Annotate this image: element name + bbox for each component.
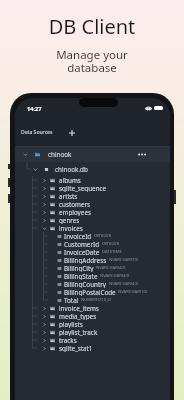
button[interactable]: artists	[15, 192, 170, 200]
button[interactable]: More options	[136, 150, 147, 159]
staticText: BillingPostalCode	[64, 288, 116, 296]
button[interactable]: BillingState	[15, 272, 170, 280]
staticText: BillingCity	[64, 264, 94, 272]
staticText: sqlite_stat1	[59, 344, 93, 352]
staticText: playlist_track	[59, 328, 98, 336]
staticText: chinook	[48, 150, 72, 159]
staticText: NVARCHAR(70)	[109, 257, 139, 263]
staticText: InvoiceId	[64, 232, 92, 240]
staticText: media_types	[59, 312, 97, 320]
staticText: CustomerId	[64, 240, 100, 248]
button[interactable]: Total	[15, 296, 170, 304]
button[interactable]: playlists	[15, 320, 170, 328]
button[interactable]: media_types	[15, 312, 170, 320]
staticText: NVARCHAR(40)	[96, 265, 126, 271]
button[interactable]: genres	[15, 216, 170, 224]
staticText: NVARCHAR(40)	[109, 281, 139, 287]
button[interactable]: invoices	[15, 224, 170, 232]
staticText: genres	[59, 216, 80, 224]
staticText: INTEGER	[102, 241, 120, 247]
button[interactable]: invoice_items	[15, 304, 170, 312]
button[interactable]: playlist_track	[15, 328, 170, 336]
staticText: NVARCHAR(10)	[118, 289, 148, 295]
staticText: Total	[64, 296, 79, 304]
staticText: 14:27	[27, 105, 42, 113]
staticText: albums	[59, 176, 81, 184]
staticText: artists	[59, 192, 78, 200]
button[interactable]: tracks	[15, 336, 170, 344]
staticText: tracks	[59, 336, 77, 344]
staticText: NVARCHAR(40)	[100, 273, 130, 279]
button[interactable]: Data Sources	[21, 129, 53, 136]
button[interactable]: chinook.db	[15, 162, 170, 176]
button[interactable]: Add data source	[66, 127, 77, 138]
button[interactable]: chinook	[15, 147, 170, 162]
staticText: employees	[59, 208, 91, 216]
button[interactable]: customers	[15, 200, 170, 208]
staticText: DB Client	[0, 13, 184, 40]
button[interactable]: BillingCountry	[15, 280, 170, 288]
staticText: customers	[59, 200, 91, 208]
staticText: NUMERIC(10,2)	[81, 297, 111, 303]
staticText: chinook.db	[55, 165, 88, 174]
button[interactable]: sqlite_stat1	[15, 344, 170, 352]
button[interactable]: albums	[15, 176, 170, 184]
button[interactable]: BillingAddress	[15, 256, 170, 264]
staticText: BillingCountry	[64, 280, 107, 288]
staticText: INTEGER	[94, 233, 112, 239]
staticText: BillingState	[64, 272, 98, 280]
staticText: BillingAddress	[64, 256, 107, 264]
staticText: invoice_items	[59, 304, 99, 312]
button[interactable]: InvoiceId	[15, 232, 170, 240]
button[interactable]: employees	[15, 208, 170, 216]
staticText: sqlite_sequence	[59, 184, 107, 192]
staticText: invoices	[59, 224, 83, 232]
button[interactable]: BillingCity	[15, 264, 170, 272]
button[interactable]: InvoiceDate	[15, 248, 170, 256]
staticText: playlists	[59, 320, 83, 328]
staticText: Manage your database	[0, 47, 184, 75]
button[interactable]: sqlite_sequence	[15, 184, 170, 192]
button[interactable]: CustomerId	[15, 240, 170, 248]
staticText: InvoiceDate	[64, 248, 100, 256]
button[interactable]: BillingPostalCode	[15, 288, 170, 296]
staticText: DATETIME	[102, 249, 122, 255]
